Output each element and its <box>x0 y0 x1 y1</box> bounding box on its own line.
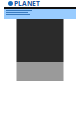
staticText: PLANET <box>14 0 40 8</box>
